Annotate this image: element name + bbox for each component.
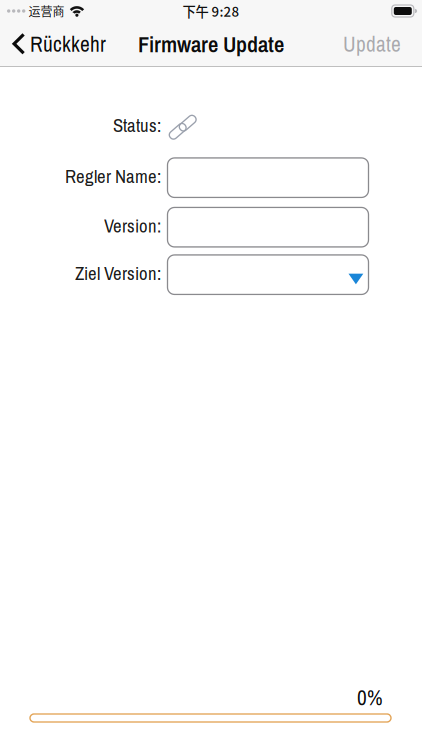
staticText: 运营商 — [28, 2, 64, 20]
staticText: Ziel Version: — [75, 261, 161, 286]
staticText: Status: — [113, 113, 161, 138]
staticText: Version: — [104, 213, 161, 238]
staticText: Rückkehr — [30, 30, 106, 58]
staticText: Update — [343, 30, 401, 58]
staticText: 下午 9:28 — [182, 1, 239, 21]
button[interactable]: Rückkehr — [0, 22, 114, 66]
staticText: Regler Name: — [65, 164, 161, 189]
button[interactable]: Update — [331, 22, 422, 66]
staticText: Firmware Update — [138, 29, 284, 59]
staticText: 0% — [357, 683, 383, 712]
